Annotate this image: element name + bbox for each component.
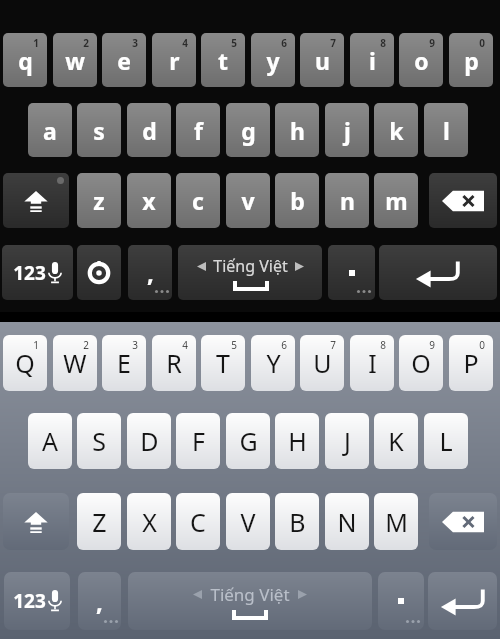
staticText: v: [241, 185, 255, 216]
button[interactable]: c: [176, 173, 220, 228]
button[interactable]: e: [102, 33, 146, 87]
staticText: c: [192, 185, 204, 216]
button[interactable]: Numbers and voice input: [2, 245, 73, 300]
staticText: K: [388, 424, 404, 458]
button[interactable]: v: [226, 173, 270, 228]
staticText: 7: [330, 36, 336, 50]
button[interactable]: Shift: [3, 493, 69, 550]
button[interactable]: U: [300, 335, 344, 391]
button[interactable]: W: [53, 335, 97, 391]
button[interactable]: V: [226, 493, 270, 550]
button[interactable]: o: [399, 33, 443, 87]
staticText: 1: [33, 338, 39, 352]
button[interactable]: p: [449, 33, 493, 87]
button[interactable]: Q: [3, 335, 47, 391]
staticText: j: [344, 115, 351, 146]
staticText: w: [65, 45, 85, 76]
button[interactable]: t: [201, 33, 245, 87]
button[interactable]: P: [449, 335, 493, 391]
staticText: l: [443, 115, 450, 146]
staticText: 2: [83, 338, 89, 352]
staticText: b: [290, 185, 305, 216]
button[interactable]: j: [325, 103, 369, 157]
staticText: L: [439, 424, 453, 458]
staticText: u: [315, 45, 330, 76]
button[interactable]: g: [226, 103, 270, 157]
button[interactable]: Enter: [428, 572, 497, 630]
button[interactable]: E: [102, 335, 146, 391]
button[interactable]: z: [77, 173, 121, 228]
button[interactable]: H: [275, 413, 319, 469]
button[interactable]: Z: [77, 493, 121, 550]
staticText: 6: [281, 338, 287, 352]
button[interactable]: J: [325, 413, 369, 469]
button[interactable]: M: [374, 493, 418, 550]
button[interactable]: D: [127, 413, 171, 469]
button[interactable]: Settings: [77, 245, 121, 300]
button[interactable]: I: [350, 335, 394, 391]
staticText: B: [289, 505, 306, 539]
button[interactable]: b: [275, 173, 319, 228]
button[interactable]: Enter: [379, 245, 497, 300]
button[interactable]: L: [424, 413, 468, 469]
staticText: R: [166, 346, 182, 380]
button[interactable]: m: [374, 173, 418, 228]
staticText: A: [42, 424, 58, 458]
staticText: 7: [330, 338, 336, 352]
staticText: o: [414, 45, 429, 76]
button[interactable]: k: [374, 103, 418, 157]
staticText: O: [411, 346, 431, 380]
button[interactable]: l: [424, 103, 468, 157]
button[interactable]: [328, 245, 375, 300]
button[interactable]: F: [176, 413, 220, 469]
staticText: I: [368, 346, 377, 380]
button[interactable]: O: [399, 335, 443, 391]
button[interactable]: q: [3, 33, 47, 87]
button[interactable]: A: [28, 413, 72, 469]
button[interactable]: Shift: [3, 173, 69, 228]
staticText: 2: [83, 36, 89, 50]
button[interactable]: Numbers and voice input: [4, 572, 70, 630]
button[interactable]: C: [176, 493, 220, 550]
button[interactable]: ,: [128, 245, 172, 300]
button[interactable]: S: [77, 413, 121, 469]
button[interactable]: f: [176, 103, 220, 157]
button[interactable]: u: [300, 33, 344, 87]
staticText: k: [389, 115, 404, 146]
staticText: 4: [182, 338, 188, 352]
button[interactable]: Space, Tiếng Việt: [178, 245, 322, 300]
button[interactable]: i: [350, 33, 394, 87]
button[interactable]: R: [152, 335, 196, 391]
staticText: G: [239, 424, 258, 458]
button[interactable]: B: [275, 493, 319, 550]
staticText: 5: [231, 36, 237, 50]
button[interactable]: n: [325, 173, 369, 228]
staticText: J: [344, 424, 351, 458]
button[interactable]: Y: [251, 335, 295, 391]
button[interactable]: x: [127, 173, 171, 228]
button[interactable]: N: [325, 493, 369, 550]
button[interactable]: [378, 572, 424, 630]
button[interactable]: Backspace: [429, 493, 497, 550]
button[interactable]: y: [251, 33, 295, 87]
staticText: h: [290, 115, 305, 146]
button[interactable]: ,: [78, 572, 121, 630]
button[interactable]: G: [226, 413, 270, 469]
button[interactable]: X: [127, 493, 171, 550]
button[interactable]: s: [77, 103, 121, 157]
button[interactable]: w: [53, 33, 97, 87]
button[interactable]: d: [127, 103, 171, 157]
staticText: r: [169, 45, 180, 76]
button[interactable]: Backspace: [429, 173, 497, 228]
staticText: d: [142, 115, 157, 146]
button[interactable]: r: [152, 33, 196, 87]
button[interactable]: Space, Tiếng Việt: [128, 572, 372, 630]
button[interactable]: h: [275, 103, 319, 157]
button[interactable]: a: [28, 103, 72, 157]
staticText: p: [464, 45, 479, 76]
staticText: y: [266, 45, 280, 76]
staticText: 8: [380, 338, 386, 352]
button[interactable]: T: [201, 335, 245, 391]
button[interactable]: K: [374, 413, 418, 469]
staticText: 3: [132, 36, 138, 50]
